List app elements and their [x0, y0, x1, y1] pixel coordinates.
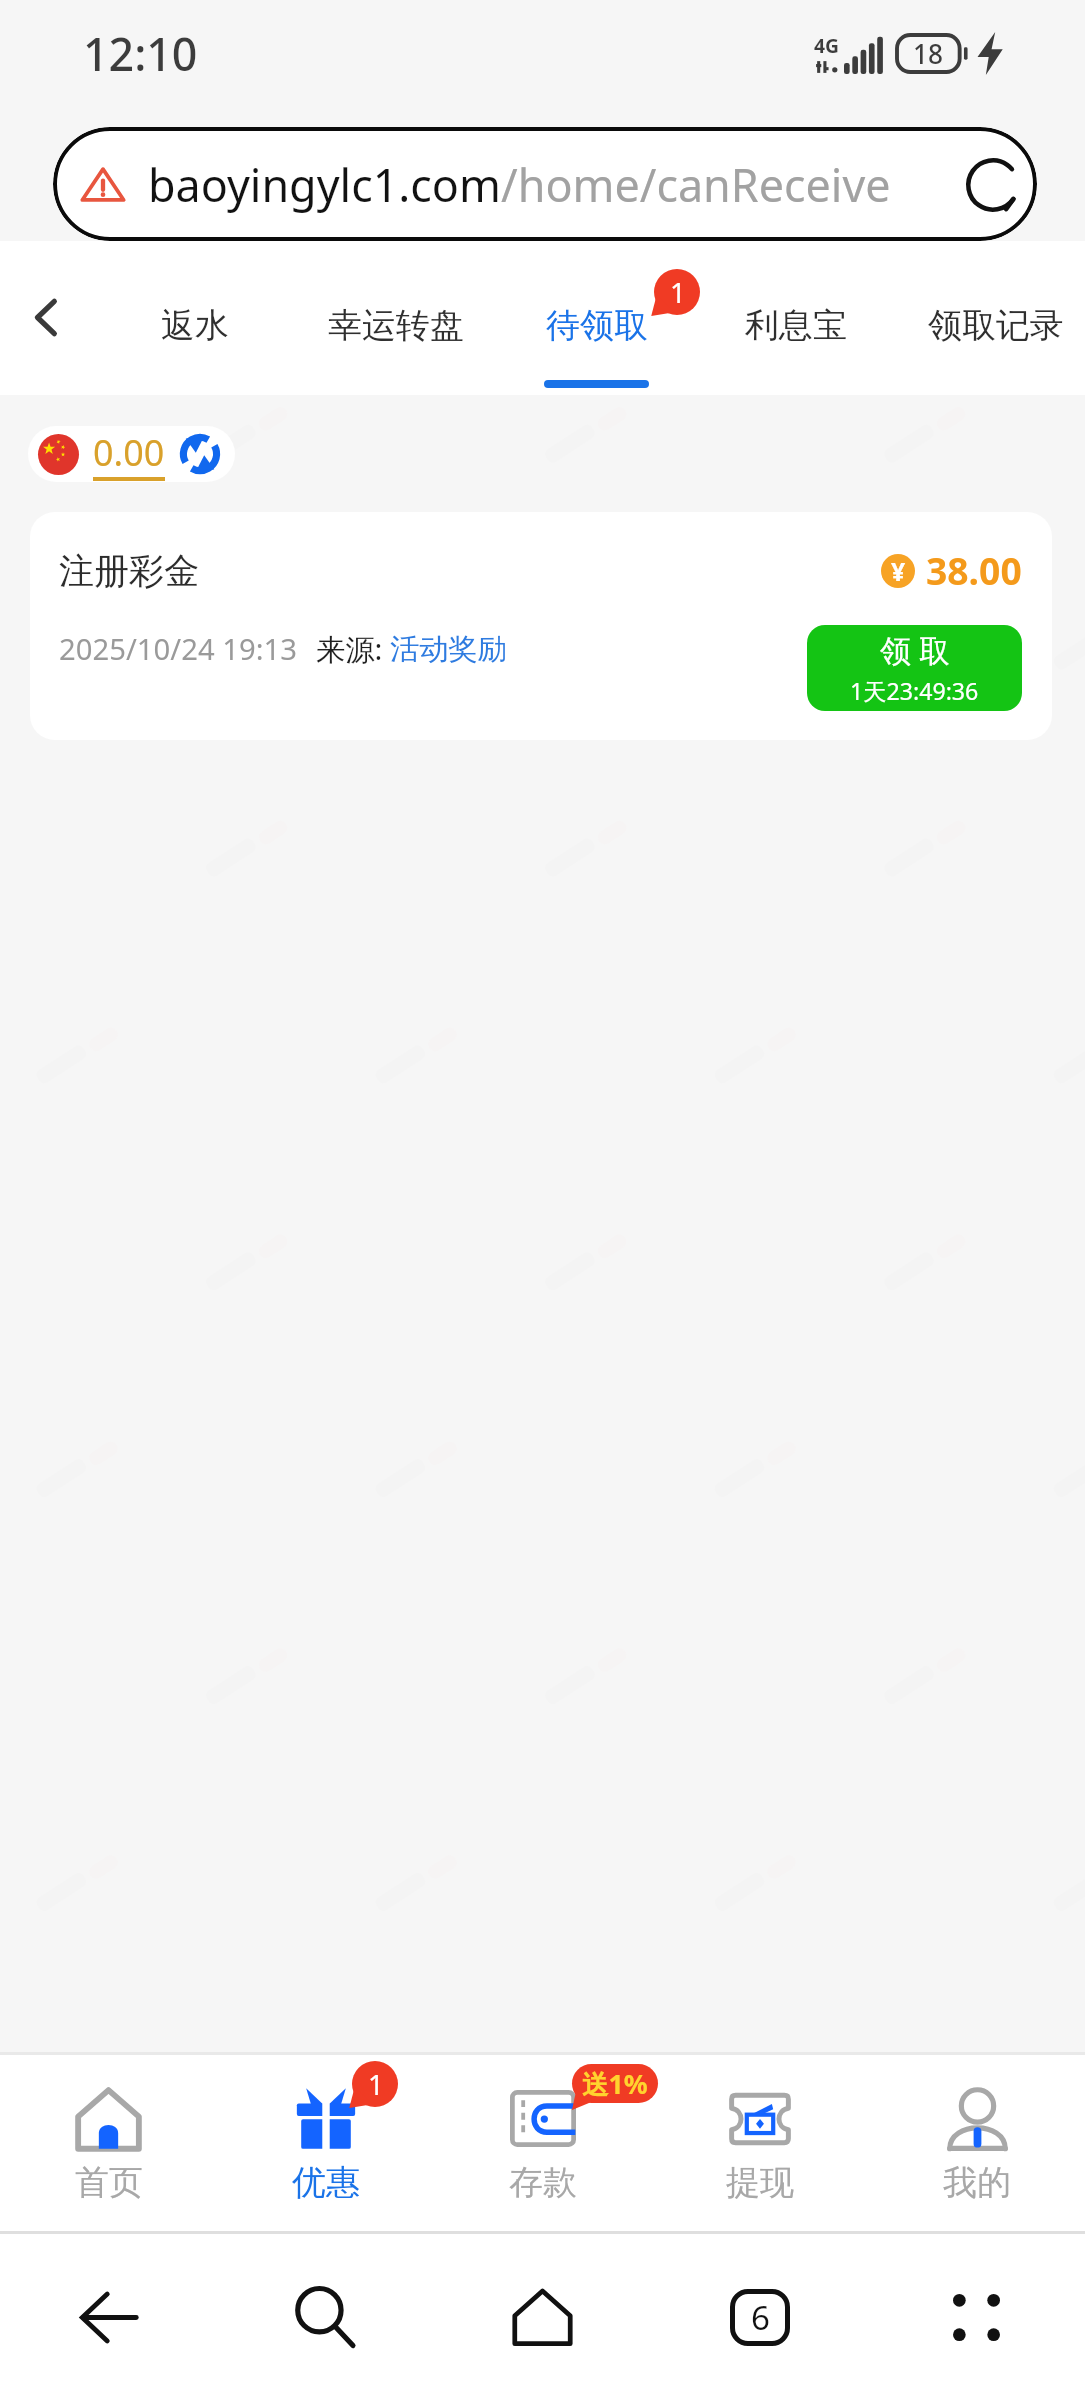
- button[interactable]: 领取记录: [896, 241, 1085, 395]
- button[interactable]: 送1%: [434, 2055, 651, 2231]
- button[interactable]: baoyingylc1.com: [53, 127, 1037, 241]
- staticText: 1天23:49:36: [850, 675, 979, 707]
- staticText: baoyingylc1.com: [148, 154, 501, 215]
- button[interactable]: 领 取: [807, 625, 1022, 711]
- staticText: 6: [751, 2295, 770, 2340]
- staticText: 注册彩金: [59, 549, 200, 593]
- staticText: 18: [913, 36, 943, 72]
- staticText: 优惠: [292, 2161, 360, 2204]
- staticText: 送1%: [582, 2066, 648, 2102]
- staticText: ¥: [891, 554, 906, 588]
- staticText: /home/canReceive: [501, 154, 891, 215]
- button[interactable]: Tabs: [651, 2234, 868, 2400]
- staticText: 4G: [814, 32, 840, 58]
- staticText: 1: [670, 273, 686, 311]
- button[interactable]: More options: [868, 2234, 1085, 2400]
- staticText: 2025/10/24 19:13: [59, 629, 297, 669]
- staticText: 来源:: [316, 629, 390, 669]
- button[interactable]: Search: [217, 2234, 434, 2400]
- staticText: 领 取: [880, 629, 950, 671]
- other: Refresh balance: [179, 433, 221, 475]
- button[interactable]: Back: [0, 2234, 217, 2400]
- staticText: 待领取: [546, 304, 648, 347]
- staticText: 1: [368, 2065, 384, 2103]
- staticText: 38.00: [926, 545, 1022, 596]
- staticText: 幸运转盘: [328, 304, 464, 347]
- staticText: 利息宝: [745, 304, 847, 347]
- staticText: 我的: [943, 2161, 1011, 2204]
- staticText: 存款: [509, 2161, 577, 2204]
- staticText: 12:10: [83, 23, 198, 84]
- staticText: 提现: [726, 2161, 794, 2204]
- button[interactable]: 利息宝: [696, 241, 896, 395]
- staticText: 首页: [75, 2161, 143, 2204]
- other: Reload: [966, 158, 1020, 212]
- staticText: 0.00: [93, 428, 165, 477]
- button[interactable]: Back: [8, 291, 83, 343]
- staticText: 领取记录: [928, 304, 1064, 347]
- staticText: 返水: [161, 304, 229, 347]
- button[interactable]: 提现: [651, 2055, 868, 2231]
- button[interactable]: 幸运转盘: [295, 241, 496, 395]
- button[interactable]: 返水: [94, 241, 295, 395]
- button[interactable]: 0.00: [38, 426, 221, 482]
- button[interactable]: 待领取: [496, 241, 696, 395]
- staticText: 活动奖励: [390, 631, 507, 668]
- button[interactable]: 注册彩金: [30, 512, 1052, 740]
- button[interactable]: 首页: [0, 2055, 217, 2231]
- button[interactable]: 1: [217, 2055, 434, 2231]
- button[interactable]: 我的: [868, 2055, 1085, 2231]
- button[interactable]: Home: [434, 2234, 651, 2400]
